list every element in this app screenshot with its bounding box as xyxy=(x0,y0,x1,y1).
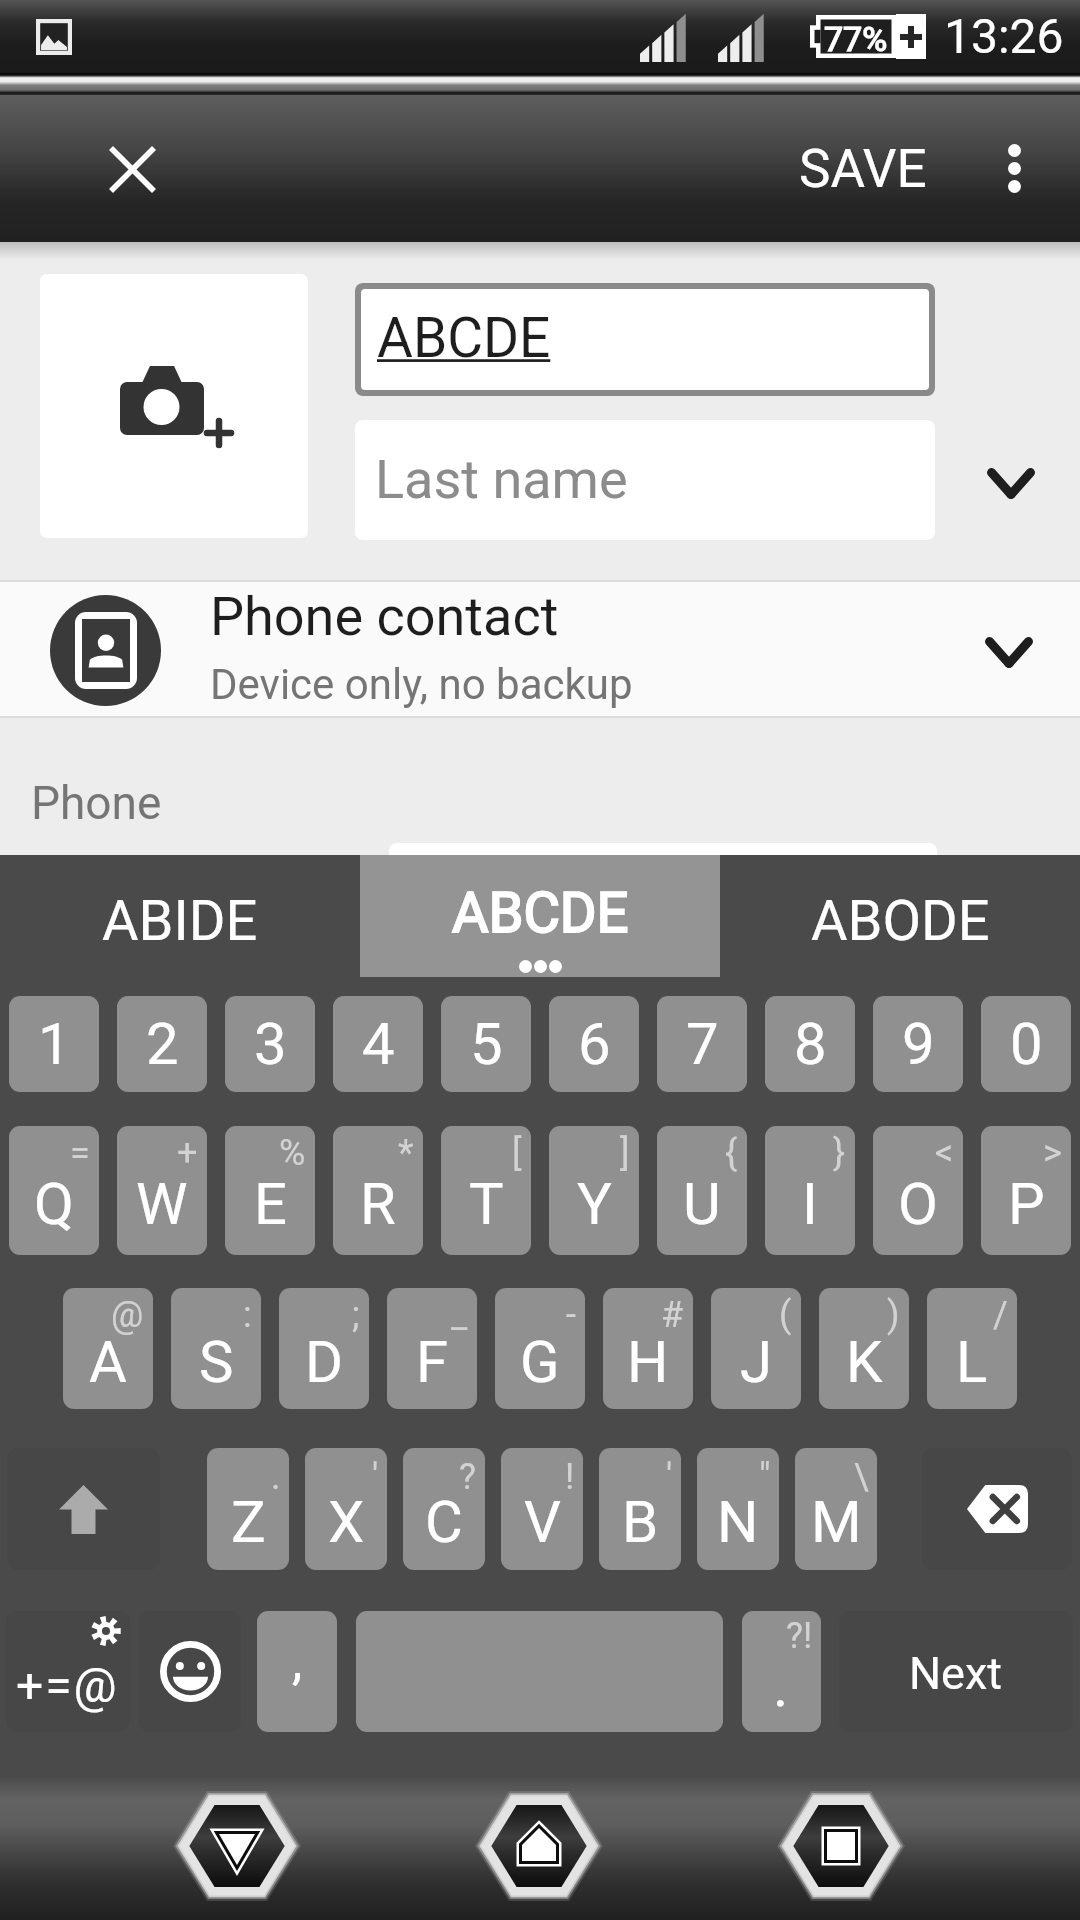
button[interactable]: > xyxy=(981,1126,1071,1255)
staticText: \ xyxy=(854,1456,869,1498)
button[interactable]: ! xyxy=(501,1448,583,1570)
staticText: 1 xyxy=(38,1010,71,1078)
button[interactable]: % xyxy=(225,1126,315,1255)
button[interactable]: Emoji xyxy=(139,1611,241,1732)
button[interactable]: ABCDE xyxy=(361,289,929,390)
staticText: M xyxy=(811,1488,862,1556)
staticText: ; xyxy=(352,1294,360,1336)
button[interactable]: = xyxy=(9,1126,99,1255)
button[interactable]: 8 xyxy=(765,996,855,1092)
button[interactable]: Last name xyxy=(355,420,935,540)
button[interactable]: Back xyxy=(159,1778,315,1914)
staticText: Last name xyxy=(375,448,628,511)
button[interactable]: 4 xyxy=(333,996,423,1092)
button[interactable]: 1 xyxy=(9,996,99,1092)
button[interactable]: ; xyxy=(279,1288,369,1409)
staticText: 13:26 xyxy=(944,8,1064,64)
button[interactable]: Backspace xyxy=(922,1448,1072,1570)
button[interactable]: } xyxy=(765,1126,855,1255)
button[interactable]: More options xyxy=(966,120,1062,216)
staticText: 8 xyxy=(794,1010,827,1078)
button[interactable]: \ xyxy=(795,1448,877,1570)
button[interactable]: . xyxy=(207,1448,289,1570)
button[interactable]: +=@ xyxy=(6,1611,130,1732)
button[interactable]: 5 xyxy=(441,996,531,1092)
staticText: , xyxy=(292,1631,303,1692)
button[interactable]: Next xyxy=(839,1611,1073,1732)
button[interactable]: < xyxy=(873,1126,963,1255)
staticText: . xyxy=(773,1652,789,1720)
button[interactable]: 2 xyxy=(117,996,207,1092)
staticText: W xyxy=(136,1170,188,1238)
staticText: 4 xyxy=(362,1010,395,1078)
button[interactable]: * xyxy=(333,1126,423,1255)
staticText: Phone xyxy=(31,776,162,830)
button[interactable]: Phone contact xyxy=(0,580,1080,718)
staticText: @ xyxy=(111,1294,144,1336)
button[interactable]: + xyxy=(117,1126,207,1255)
button[interactable]: 7 xyxy=(657,996,747,1092)
staticText: N xyxy=(717,1488,759,1556)
button[interactable]: Shift xyxy=(7,1448,160,1570)
staticText: Next xyxy=(909,1647,1003,1700)
button[interactable]: - xyxy=(495,1288,585,1409)
staticText: ABODE xyxy=(811,888,990,954)
button[interactable]: Recent apps xyxy=(763,1778,919,1914)
button[interactable]: { xyxy=(657,1126,747,1255)
staticText: * xyxy=(398,1132,414,1174)
staticText: = xyxy=(70,1132,90,1174)
staticText: +=@ xyxy=(16,1657,119,1713)
staticText: ? xyxy=(459,1456,477,1498)
button[interactable]: ABIDE xyxy=(0,855,360,977)
staticText: # xyxy=(661,1294,684,1336)
staticText: ?! xyxy=(786,1615,813,1657)
staticText: G xyxy=(520,1328,560,1396)
button[interactable]: , xyxy=(257,1611,337,1732)
button[interactable]: @ xyxy=(63,1288,153,1409)
staticText: < xyxy=(935,1132,954,1174)
staticText: + xyxy=(177,1132,198,1174)
button[interactable]: 0 xyxy=(981,996,1071,1092)
button[interactable]: 9 xyxy=(873,996,963,1092)
staticText: S xyxy=(199,1328,234,1396)
button[interactable]: ' xyxy=(599,1448,681,1570)
button[interactable]: Home xyxy=(461,1778,617,1914)
staticText: K xyxy=(846,1328,883,1396)
button[interactable]: Space xyxy=(356,1611,723,1732)
button[interactable]: SAVE xyxy=(777,116,949,222)
staticText: ( xyxy=(779,1294,792,1336)
staticText: - xyxy=(566,1294,576,1336)
staticText: J xyxy=(740,1328,773,1396)
button[interactable]: _ xyxy=(387,1288,477,1409)
button[interactable]: [ xyxy=(441,1126,531,1255)
button[interactable]: Add photo xyxy=(40,274,308,538)
button[interactable]: Expand name fields xyxy=(961,433,1061,533)
button[interactable]: ABODE xyxy=(720,855,1080,977)
button[interactable]: ( xyxy=(711,1288,801,1409)
staticText: B xyxy=(622,1488,659,1556)
staticText: Device only, no backup xyxy=(210,660,633,709)
staticText: : xyxy=(243,1294,252,1336)
staticText: T xyxy=(469,1170,504,1238)
button[interactable]: " xyxy=(697,1448,779,1570)
staticText: 6 xyxy=(578,1010,611,1078)
button[interactable]: # xyxy=(603,1288,693,1409)
button[interactable]: / xyxy=(927,1288,1017,1409)
button[interactable]: 6 xyxy=(549,996,639,1092)
staticText: 77% xyxy=(824,19,888,59)
button[interactable]: ? xyxy=(403,1448,485,1570)
staticText: H xyxy=(627,1328,669,1396)
button[interactable]: 3 xyxy=(225,996,315,1092)
staticText: Z xyxy=(231,1488,266,1556)
staticText: 9 xyxy=(902,1010,935,1078)
button[interactable]: ?! xyxy=(742,1611,821,1732)
button[interactable]: ' xyxy=(305,1448,387,1570)
button[interactable]: : xyxy=(171,1288,261,1409)
button[interactable]: ABCDE xyxy=(360,855,720,977)
staticText: R xyxy=(360,1170,396,1238)
staticText: O xyxy=(898,1170,938,1238)
button[interactable]: ) xyxy=(819,1288,909,1409)
staticText: F xyxy=(416,1328,449,1396)
button[interactable]: Close xyxy=(87,124,177,214)
button[interactable]: ] xyxy=(549,1126,639,1255)
